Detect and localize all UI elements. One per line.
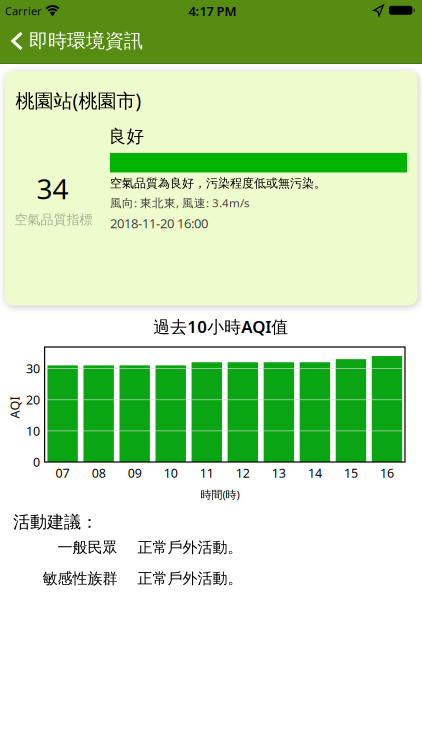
staticText: 12	[236, 464, 250, 481]
staticText: 09	[128, 464, 142, 481]
staticText: 16	[380, 464, 394, 481]
staticText: 30	[26, 360, 40, 377]
staticText: 即時環境資訊	[29, 29, 143, 53]
staticText: 桃園站(桃園市)	[15, 88, 141, 113]
staticText: 20	[26, 391, 40, 408]
staticText: 34	[36, 169, 68, 207]
staticText: 2018-11-20 16:00	[110, 214, 208, 232]
staticText: 14	[308, 464, 322, 481]
button[interactable]: Back	[0, 29, 422, 53]
staticText: 正常戶外活動。	[137, 538, 242, 557]
staticText: AQI	[4, 399, 26, 416]
staticText: 0	[33, 453, 40, 470]
staticText: 10	[164, 464, 178, 481]
staticText: 敏感性族群	[42, 569, 117, 588]
staticText: 15	[344, 464, 358, 481]
staticText: 良好	[108, 125, 144, 147]
staticText: 07	[56, 464, 70, 481]
staticText: 08	[92, 464, 106, 481]
staticText: 空氣品質為良好，污染程度低或無污染。	[110, 176, 326, 191]
staticText: 風向: 東北東, 風速: 3.4m/s	[110, 195, 250, 211]
staticText: 正常戶外活動。	[137, 569, 242, 588]
staticText: 時間(時)	[200, 487, 239, 502]
staticText: 活動建議：	[13, 511, 98, 533]
staticText: 一般民眾	[57, 538, 117, 557]
button[interactable]: Location Services	[373, 4, 384, 16]
staticText: Carrier	[5, 3, 42, 18]
staticText: 10	[26, 422, 40, 439]
staticText: 11	[200, 464, 214, 481]
staticText: 4:17 PM	[188, 2, 236, 20]
staticText: 過去10小時AQI值	[153, 315, 288, 338]
staticText: 13	[272, 464, 286, 481]
staticText: 空氣品質指標	[14, 211, 92, 228]
